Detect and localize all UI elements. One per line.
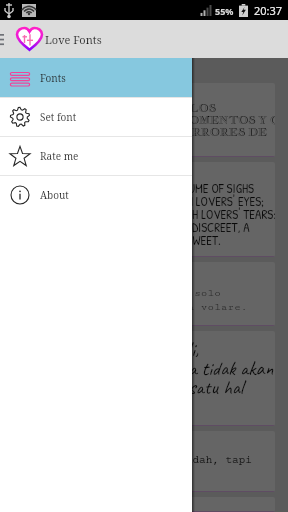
staticText: BEING PURGED, A FIRE SPARKLING IN LOVERS… (21, 192, 265, 210)
staticText: BEING VEXED, A SEA NOURISH'D WITH LOVERS… (21, 205, 275, 223)
button[interactable]: Set font (0, 97, 192, 136)
button[interactable]: Amore mio, io ti amo (13, 262, 275, 326)
staticText: berkata-kata yang manis indah, tapi (21, 454, 252, 466)
staticText: Fonts (40, 71, 66, 85)
button[interactable]: About (0, 175, 192, 214)
staticText: sebab cinta membuat kita tidak akan (21, 356, 274, 381)
button[interactable]: Cinta itu indah dan abadi, (13, 331, 275, 426)
staticText: LOVE IS A SMOKE MADE WITH THE FUME OF SI… (21, 179, 254, 197)
staticText: Cinta itu indah dan abadi, (21, 337, 199, 362)
button[interactable]: LOVE IS A SMOKE MADE WITH THE FUME OF SI… (13, 162, 275, 257)
staticText: con te io posso imparare a volare. (21, 301, 248, 313)
staticText: About (40, 188, 69, 202)
staticText: CHOKING GALL AND A PRESERVING SWEET. (21, 231, 221, 249)
staticText: Rate me (40, 149, 79, 163)
staticText: cosi tanto come il vento, solo (21, 287, 221, 299)
button[interactable]: Rate me (0, 136, 192, 175)
staticText: WHAT IS IT ELSE? A MADNESS MOST DISCREET… (21, 218, 250, 236)
staticText: OJOS, SINO COMPARTIR MOMENTOS Y CON (21, 113, 275, 128)
staticText: TODO EL CORAZON LOS ERRORES DE (21, 125, 268, 140)
staticText: Set font (40, 110, 77, 124)
staticText: pernah takut melakukan satu hal (21, 375, 244, 400)
button[interactable]: Fonts (0, 58, 192, 97)
button[interactable]: Aku tak pandai (13, 431, 275, 492)
button[interactable]: EL AMOR NO ES MIRARSE LOS (13, 83, 275, 157)
button[interactable]: Love is not about how much you say (13, 497, 275, 512)
staticText: Love Fonts (45, 32, 102, 47)
staticText: 55% (215, 5, 234, 17)
staticText: EL AMOR NO ES MIRARSE LOS (21, 101, 217, 116)
staticText: 20:37 (254, 3, 283, 18)
button[interactable]: Open navigation drawer (0, 20, 14, 58)
